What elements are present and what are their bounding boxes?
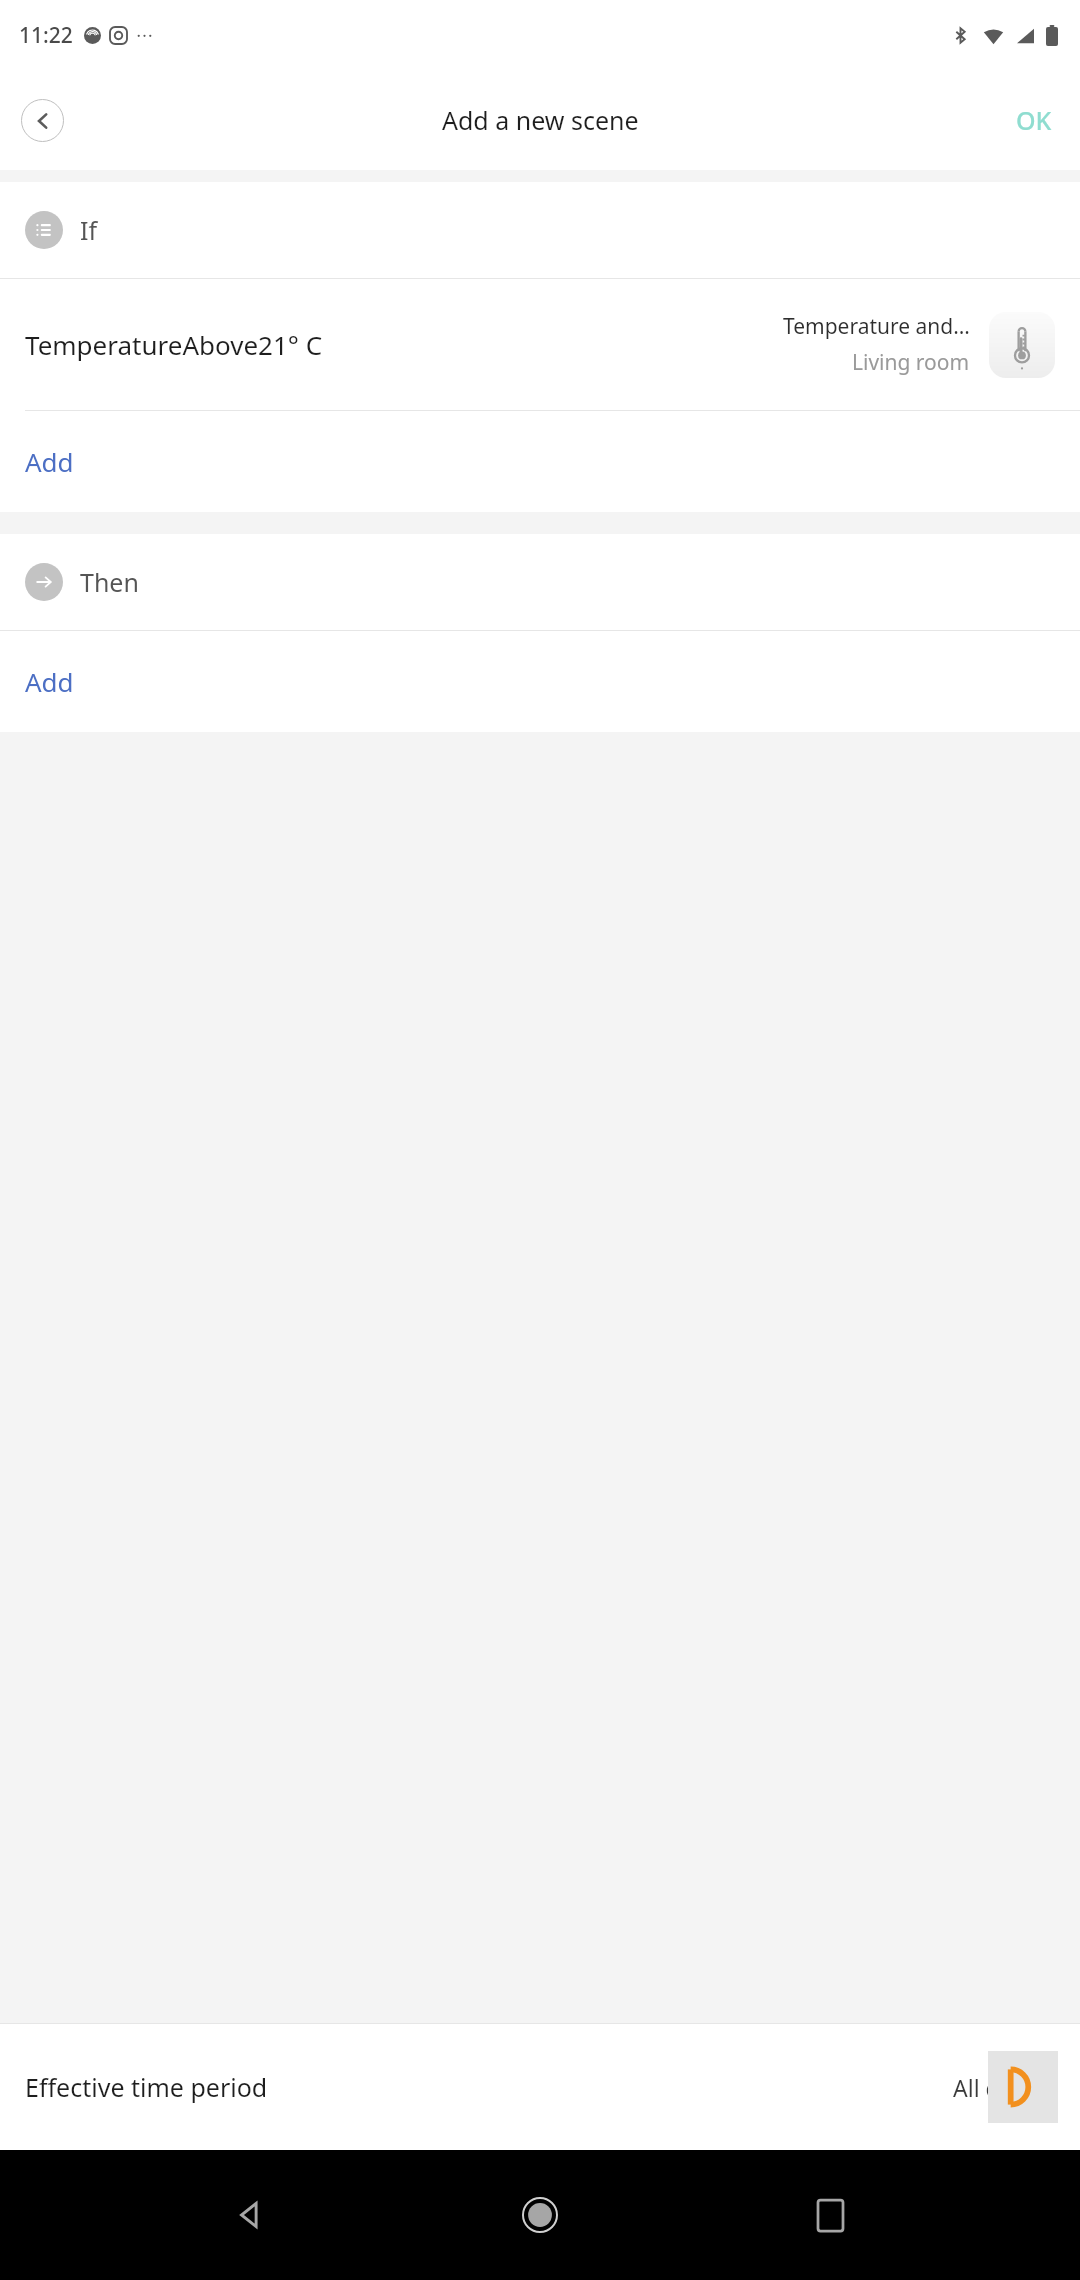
button[interactable]: Effective time period	[0, 2024, 1080, 2150]
staticText: Add a new scene	[442, 103, 639, 137]
staticText: TemperatureAbove21° C	[25, 327, 323, 362]
staticText: All day	[953, 2072, 1025, 2103]
button[interactable]: Home	[500, 2175, 580, 2255]
staticText: Living room	[852, 348, 970, 377]
staticText: Then	[80, 565, 139, 599]
staticText: Add	[25, 444, 74, 479]
button[interactable]: OK	[988, 89, 1080, 151]
staticText: 11:22	[19, 21, 73, 50]
staticText: Effective time period	[25, 2070, 268, 2104]
button[interactable]: Add	[0, 411, 1080, 512]
button[interactable]: If	[0, 182, 1080, 278]
staticText: Temperature and…	[783, 312, 970, 341]
button[interactable]: Back	[21, 99, 64, 142]
button[interactable]: TemperatureAbove21° C	[0, 279, 1080, 410]
staticText: OK	[1016, 103, 1052, 137]
staticText: If	[80, 213, 98, 247]
button[interactable]: Recent apps	[790, 2175, 870, 2255]
button[interactable]: Add	[0, 631, 1080, 732]
button[interactable]: Back	[210, 2175, 290, 2255]
button[interactable]: Then	[0, 534, 1080, 630]
staticText: Add	[25, 664, 74, 699]
